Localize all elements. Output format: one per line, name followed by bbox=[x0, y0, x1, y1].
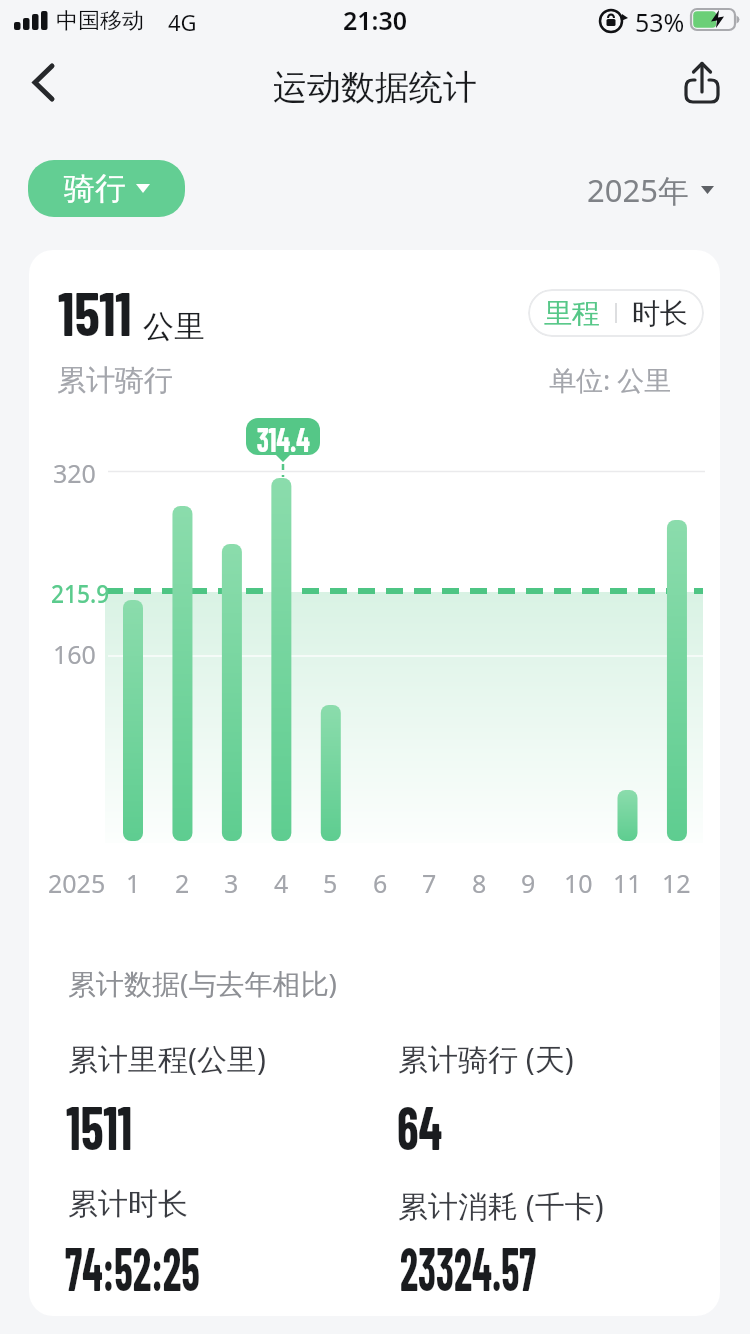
button[interactable]: 2025年 bbox=[560, 168, 730, 212]
staticText: 23324.57 bbox=[400, 1229, 536, 1303]
staticText: 21:30 bbox=[343, 3, 408, 37]
staticText: 1511 bbox=[58, 274, 132, 348]
button[interactable] bbox=[680, 56, 728, 108]
staticText: 74:52:25 bbox=[65, 1229, 200, 1303]
staticText: 64 bbox=[397, 1088, 443, 1162]
staticText: 累计时长 bbox=[68, 1185, 188, 1223]
staticText: 1511 bbox=[66, 1088, 133, 1162]
staticText: 314.4 bbox=[257, 418, 310, 455]
staticText: 累计消耗 (千卡) bbox=[398, 1185, 604, 1226]
staticText: 10 bbox=[564, 866, 593, 900]
staticText: 公里 bbox=[143, 307, 205, 346]
staticText: 160 bbox=[53, 637, 96, 671]
button[interactable]: 里程 bbox=[528, 289, 616, 337]
staticText: 里程 bbox=[544, 296, 600, 331]
staticText: 1 bbox=[126, 866, 141, 900]
staticText: 4G bbox=[168, 7, 197, 37]
staticText: 累计里程(公里) bbox=[68, 1038, 266, 1079]
staticText: 2025年 bbox=[587, 169, 689, 211]
staticText: 累计骑行 bbox=[57, 362, 173, 399]
staticText: 9 bbox=[521, 866, 536, 900]
staticText: 215.9 bbox=[51, 576, 110, 610]
staticText: 骑行 bbox=[64, 169, 126, 208]
staticText: 单位: 公里 bbox=[549, 361, 672, 398]
staticText: 2 bbox=[175, 866, 190, 900]
staticText: 8 bbox=[472, 866, 487, 900]
staticText: 53% bbox=[635, 5, 685, 39]
staticText: 11 bbox=[613, 866, 642, 900]
button[interactable]: 时长 bbox=[616, 289, 704, 337]
staticText: 5 bbox=[323, 866, 338, 900]
staticText: 累计骑行 (天) bbox=[398, 1038, 574, 1079]
staticText: 运动数据统计 bbox=[273, 66, 477, 109]
staticText: 7 bbox=[422, 866, 437, 900]
staticText: 中国移动 bbox=[56, 7, 144, 35]
staticText: 12 bbox=[662, 866, 691, 900]
staticText: 320 bbox=[53, 456, 96, 490]
staticText: 3 bbox=[224, 866, 239, 900]
staticText: 2025 bbox=[48, 866, 106, 900]
staticText: 累计数据(与去年相比) bbox=[68, 964, 337, 1002]
staticText: 时长 bbox=[632, 296, 688, 331]
button[interactable]: 骑行 bbox=[28, 160, 185, 217]
staticText: 6 bbox=[373, 866, 388, 900]
button[interactable] bbox=[20, 58, 68, 106]
staticText: 4 bbox=[274, 866, 289, 900]
